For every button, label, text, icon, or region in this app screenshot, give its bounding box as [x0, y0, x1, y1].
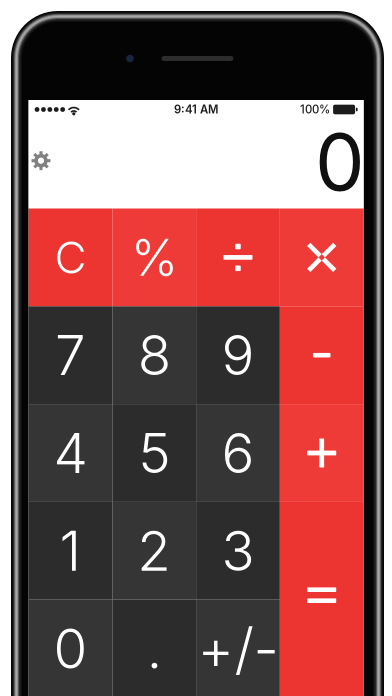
staticText: 5	[138, 420, 170, 486]
staticText: 4	[53, 420, 87, 486]
staticText: 9:41 AM	[174, 103, 218, 116]
button[interactable]: Minus	[280, 306, 364, 404]
button[interactable]: Settings	[19, 139, 62, 182]
button[interactable]: 2	[112, 502, 196, 600]
staticText: 1	[59, 518, 81, 584]
staticText: 3	[221, 518, 254, 584]
staticText: 9	[221, 322, 254, 388]
button[interactable]: Equals	[280, 502, 364, 696]
staticText: 0	[315, 114, 365, 210]
button[interactable]: Multiply	[280, 208, 364, 306]
button[interactable]: 8	[112, 306, 196, 404]
staticText: C	[54, 231, 86, 284]
button[interactable]: 9	[196, 306, 280, 404]
staticText: 6	[221, 420, 254, 486]
button[interactable]: 4	[29, 404, 112, 502]
button[interactable]: %	[112, 208, 196, 306]
button[interactable]: Divide	[196, 208, 280, 306]
staticText: +/-	[197, 615, 278, 682]
button[interactable]: Plus	[280, 404, 364, 502]
button[interactable]: 1	[29, 502, 112, 600]
staticText: 8	[138, 322, 171, 388]
button[interactable]: 6	[196, 404, 280, 502]
staticText: 2	[137, 518, 171, 584]
staticText: 7	[55, 322, 86, 388]
button[interactable]: 5	[112, 404, 196, 502]
staticText: 0	[53, 615, 87, 682]
button[interactable]: C	[29, 208, 112, 306]
button[interactable]: 7	[29, 306, 112, 404]
button[interactable]: +/-	[196, 600, 280, 696]
button[interactable]: 3	[196, 502, 280, 600]
button[interactable]: .	[112, 600, 196, 696]
staticText: %	[131, 227, 178, 288]
staticText: .	[147, 615, 162, 682]
button[interactable]: 0	[29, 600, 112, 696]
staticText: 100%	[300, 103, 330, 116]
